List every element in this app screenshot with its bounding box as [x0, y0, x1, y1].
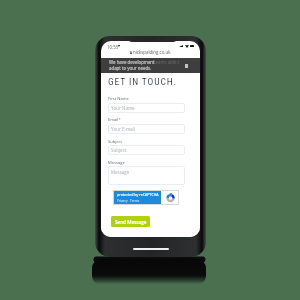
staticText: 10:55: [107, 44, 119, 50]
staticText: Subject: [108, 139, 123, 145]
staticText: Send Message: [115, 219, 147, 225]
button[interactable]: Your E-mail: [108, 124, 185, 134]
staticText: Email*: [108, 117, 121, 123]
staticText: Subject: [111, 147, 127, 153]
staticText: Privacy Terms: [117, 199, 140, 203]
button[interactable]: Send Message: [111, 216, 150, 227]
staticText: adapt to your needs.: [109, 65, 152, 71]
staticText: Your Name: [111, 105, 135, 111]
staticText: teams able t: [154, 59, 180, 65]
button[interactable]: Message: [108, 166, 185, 185]
staticText: Your E-mail: [111, 126, 135, 132]
button[interactable]: reCAPTCHA: [113, 190, 179, 205]
staticText: Message: [111, 169, 130, 175]
staticText: protected by reCAPTCHA: [117, 192, 159, 197]
staticText: We have development: [109, 59, 155, 65]
staticText: Message: [108, 160, 125, 166]
button[interactable]: Subject: [108, 145, 185, 155]
staticText: nickspalding.co.uk: [133, 49, 171, 55]
staticText: GET IN TOUCH.: [108, 76, 177, 87]
staticText: First Name: [108, 96, 129, 102]
button[interactable]: Your Name: [108, 103, 185, 113]
